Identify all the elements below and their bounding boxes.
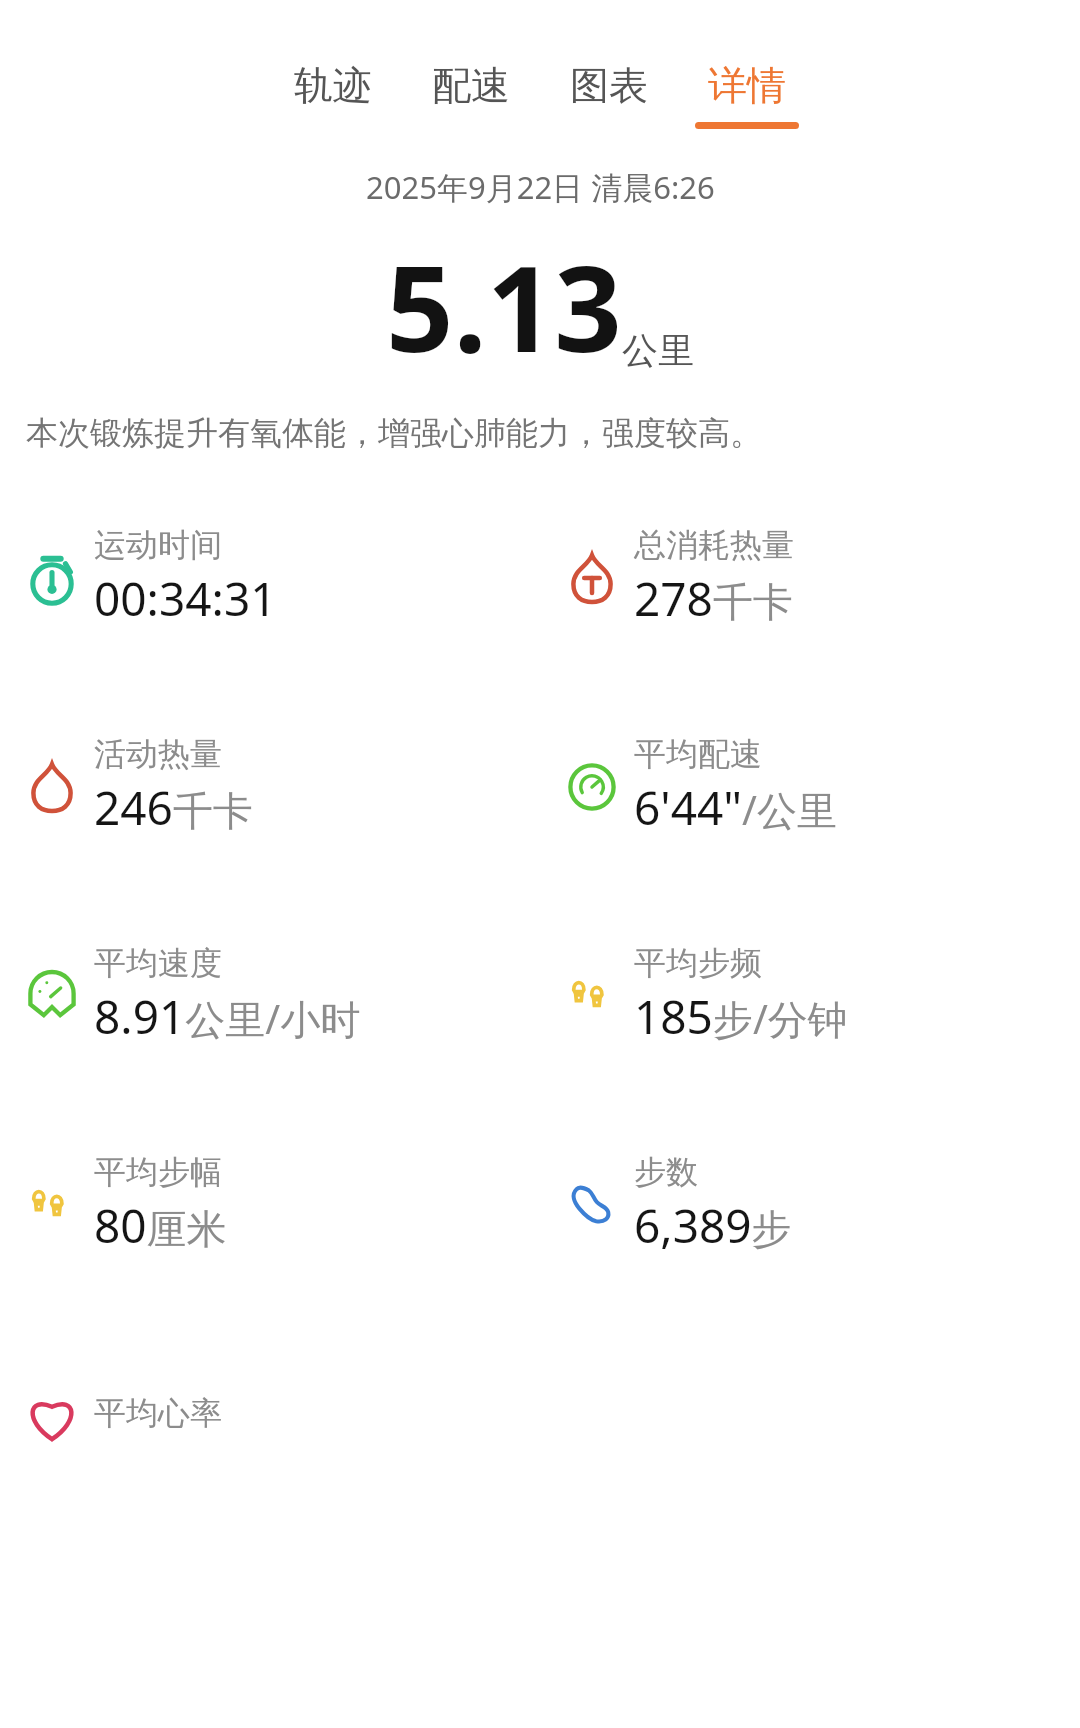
button[interactable]: Stride <box>0 1100 540 1309</box>
staticText: 轨迹 <box>294 61 372 110</box>
button[interactable]: Average speed <box>0 891 540 1100</box>
staticText: 平均步幅 <box>94 1152 222 1192</box>
staticText: 平均心率 <box>94 1393 222 1433</box>
button[interactable]: 轨迹 <box>264 58 402 132</box>
staticText: 6,389步 <box>634 1194 792 1257</box>
other: Average heart rate <box>22 1384 82 1444</box>
staticText: 本次锻炼提升有氧体能，增强心肺能力，强度较高。 <box>26 413 1058 453</box>
button[interactable]: Total calories <box>540 473 1080 682</box>
button[interactable]: Step count <box>540 1100 1080 1309</box>
other: Duration <box>22 548 82 608</box>
button[interactable]: Duration <box>0 473 540 682</box>
other: Active calories <box>22 757 82 817</box>
staticText: 运动时间 <box>94 525 222 565</box>
staticText: 5.13 <box>386 226 622 387</box>
other: Cadence <box>562 966 622 1026</box>
staticText: 总消耗热量 <box>634 525 794 565</box>
other: Stride <box>22 1175 82 1235</box>
staticText: 平均速度 <box>94 943 222 983</box>
staticText: 278千卡 <box>634 567 793 630</box>
staticText: 详情 <box>708 61 786 110</box>
staticText: 活动热量 <box>94 734 222 774</box>
staticText: 8.91公里/小时 <box>94 985 361 1048</box>
staticText: 6'44"/公里 <box>634 776 837 839</box>
button[interactable]: 图表 <box>540 58 678 132</box>
staticText: 平均配速 <box>634 734 762 774</box>
staticText: 配速 <box>432 61 510 110</box>
staticText: 2025年9月22日 清晨6:26 <box>366 166 715 208</box>
staticText: 公里 <box>622 328 694 373</box>
other: Total calories <box>562 548 622 608</box>
staticText: 80厘米 <box>94 1194 227 1257</box>
staticText: 图表 <box>570 61 648 110</box>
button[interactable]: Average pace <box>540 682 1080 891</box>
other: Average speed <box>22 966 82 1026</box>
other: Average pace <box>562 757 622 817</box>
button[interactable]: 配速 <box>402 58 540 132</box>
staticText: 步数 <box>634 1152 698 1192</box>
button[interactable]: 详情 <box>678 58 816 132</box>
staticText: 00:34:31 <box>94 567 277 630</box>
staticText: 246千卡 <box>94 776 253 839</box>
button[interactable]: Cadence <box>540 891 1080 1100</box>
button[interactable]: Active calories <box>0 682 540 891</box>
staticText: 185步/分钟 <box>634 985 848 1048</box>
staticText: 平均步频 <box>634 943 762 983</box>
button[interactable]: Average heart rate <box>0 1309 540 1518</box>
other: Step count <box>562 1175 622 1235</box>
